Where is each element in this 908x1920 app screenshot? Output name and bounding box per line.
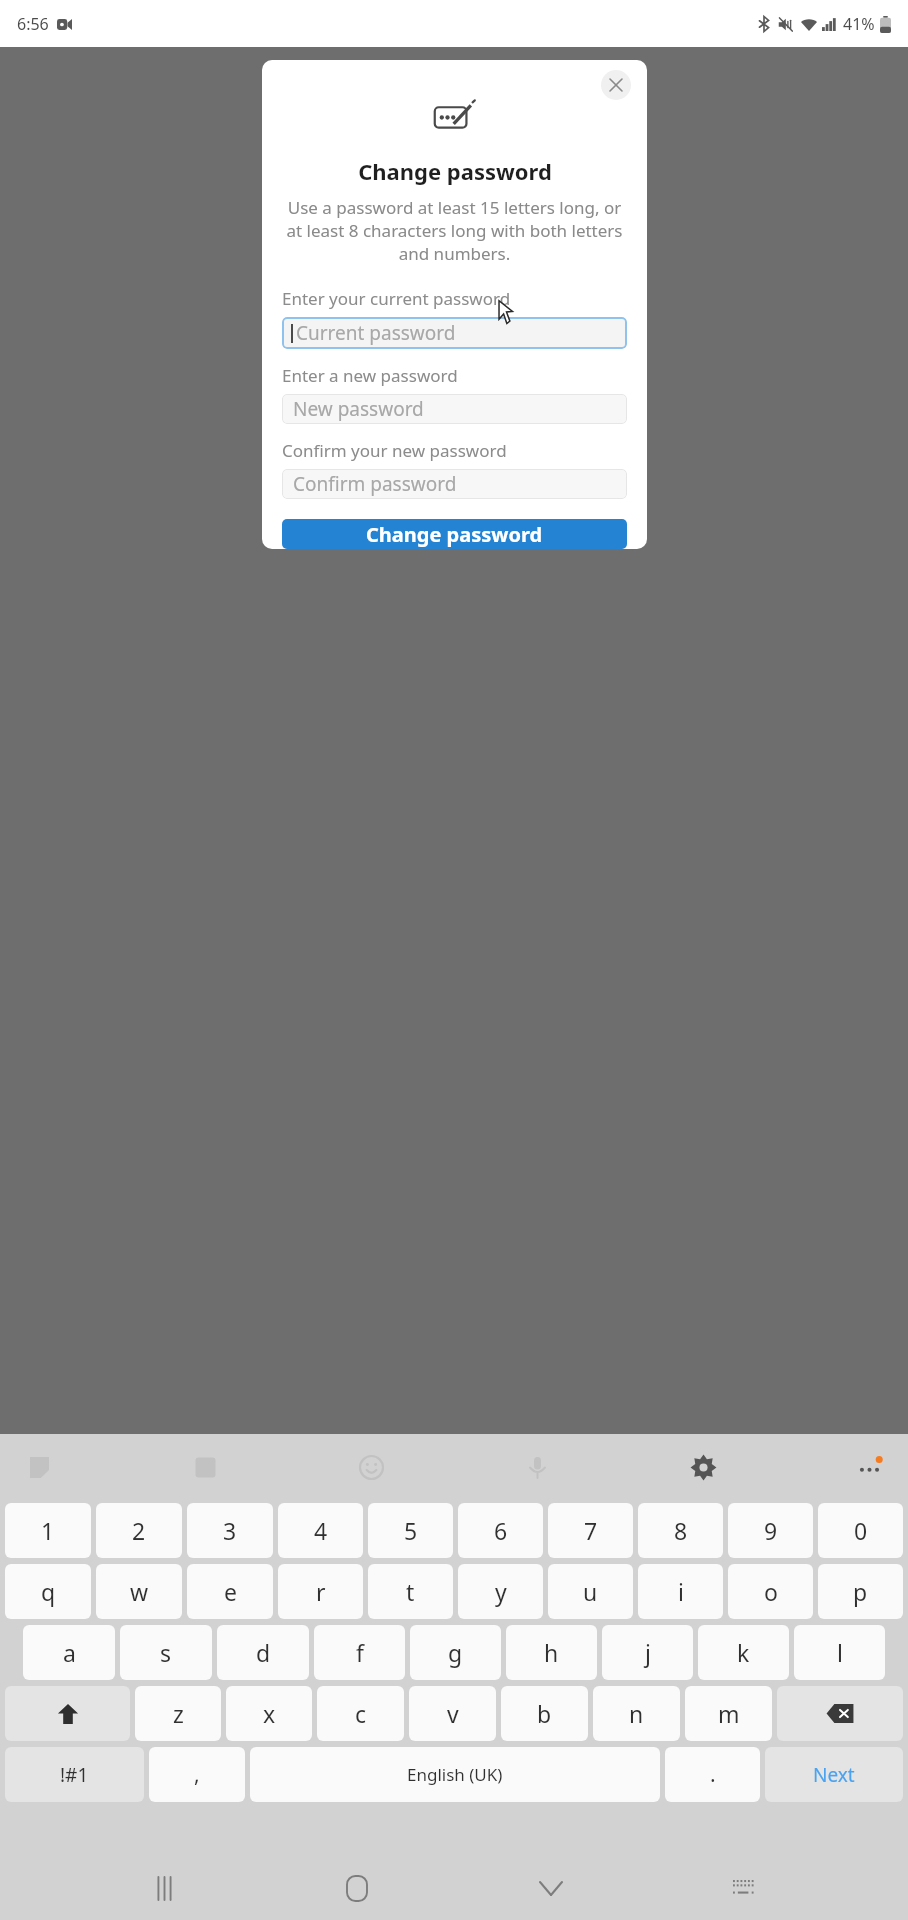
button[interactable]: o (728, 1564, 813, 1619)
button[interactable]: 9 (728, 1503, 813, 1558)
button[interactable]: Emoji (350, 1446, 392, 1488)
button[interactable]: Backspace (777, 1686, 903, 1741)
button[interactable]: English (UK) (250, 1747, 660, 1802)
button[interactable]: Change password (282, 519, 627, 549)
button[interactable]: u (548, 1564, 633, 1619)
button[interactable]: Close (601, 70, 631, 100)
staticText: 4 (314, 1515, 328, 1546)
button[interactable]: l (794, 1625, 885, 1680)
staticText: 2 (132, 1515, 146, 1546)
staticText: Enter a new password (282, 364, 627, 387)
staticText: v (447, 1698, 459, 1729)
button[interactable]: , (149, 1747, 245, 1802)
button[interactable]: z (135, 1686, 221, 1741)
button[interactable]: 5 (368, 1503, 453, 1558)
button[interactable]: GIF (184, 1446, 226, 1488)
button[interactable]: Recent apps (135, 1859, 193, 1917)
staticText: 0 (854, 1515, 868, 1546)
button[interactable]: 1 (5, 1503, 91, 1558)
staticText: . (710, 1760, 716, 1789)
button[interactable]: 2 (96, 1503, 182, 1558)
button[interactable]: q (5, 1564, 91, 1619)
button[interactable]: c (317, 1686, 404, 1741)
button[interactable]: Switch keyboard (715, 1859, 773, 1917)
button[interactable]: h (506, 1625, 597, 1680)
button[interactable]: n (593, 1686, 680, 1741)
staticText: !#1 (60, 1762, 89, 1788)
button[interactable]: i (638, 1564, 723, 1619)
button[interactable]: 6 (458, 1503, 543, 1558)
staticText: a (63, 1637, 76, 1668)
button[interactable]: Next (765, 1747, 903, 1802)
staticText: x (263, 1698, 276, 1729)
button[interactable]: e (187, 1564, 273, 1619)
button[interactable]: 8 (638, 1503, 723, 1558)
button[interactable]: b (501, 1686, 588, 1741)
staticText: Enter your current password (282, 287, 627, 310)
button[interactable]: Home (328, 1859, 386, 1917)
staticText: , (194, 1760, 200, 1789)
button[interactable]: Keyboard settings (682, 1446, 724, 1488)
staticText: s (160, 1637, 172, 1668)
button[interactable]: Hide keyboard (522, 1859, 580, 1917)
button[interactable]: !#1 (5, 1747, 144, 1802)
button[interactable]: s (120, 1625, 212, 1680)
button[interactable]: Shift (5, 1686, 130, 1741)
staticText: 6 (494, 1515, 508, 1546)
staticText: t (406, 1576, 415, 1607)
button[interactable]: Current password (282, 317, 627, 349)
staticText: p (853, 1576, 868, 1607)
button[interactable]: y (458, 1564, 543, 1619)
staticText: c (355, 1698, 367, 1729)
button[interactable]: t (368, 1564, 453, 1619)
button[interactable]: p (818, 1564, 903, 1619)
button[interactable]: a (23, 1625, 115, 1680)
button[interactable]: Stickers (18, 1446, 60, 1488)
button[interactable]: g (410, 1625, 501, 1680)
staticText: Confirm password (293, 471, 457, 497)
staticText: 1 (41, 1515, 55, 1546)
staticText: e (224, 1576, 237, 1607)
button[interactable]: Confirm password (282, 469, 627, 499)
button[interactable]: k (698, 1625, 789, 1680)
staticText: k (737, 1637, 750, 1668)
button[interactable]: r (278, 1564, 363, 1619)
staticText: 5 (404, 1515, 418, 1546)
staticText: y (495, 1576, 507, 1607)
button[interactable]: 7 (548, 1503, 633, 1558)
staticText: d (256, 1637, 271, 1668)
button[interactable]: Voice input (516, 1446, 558, 1488)
staticText: 41% (843, 13, 875, 35)
staticText: u (583, 1576, 598, 1607)
button[interactable]: 4 (278, 1503, 363, 1558)
button[interactable]: f (314, 1625, 405, 1680)
button[interactable]: More options (848, 1446, 890, 1488)
staticText: Use a password at least 15 letters long,… (284, 196, 625, 265)
staticText: z (173, 1698, 184, 1729)
staticText: i (678, 1576, 684, 1607)
staticText: r (316, 1576, 326, 1607)
button[interactable]: d (217, 1625, 309, 1680)
button[interactable]: x (226, 1686, 312, 1741)
button[interactable]: . (665, 1747, 760, 1802)
button[interactable]: w (96, 1564, 182, 1619)
button[interactable]: m (685, 1686, 772, 1741)
button[interactable]: New password (282, 394, 627, 424)
staticText: Confirm your new password (282, 439, 627, 462)
staticText: Change password (366, 521, 543, 548)
button[interactable]: 0 (818, 1503, 903, 1558)
button[interactable]: v (409, 1686, 496, 1741)
button[interactable]: j (602, 1625, 693, 1680)
staticText: q (41, 1576, 56, 1607)
staticText: w (130, 1576, 149, 1607)
button[interactable]: 3 (187, 1503, 273, 1558)
staticText: b (537, 1698, 552, 1729)
staticText: 6:56 (17, 13, 49, 35)
staticText: g (448, 1637, 463, 1668)
